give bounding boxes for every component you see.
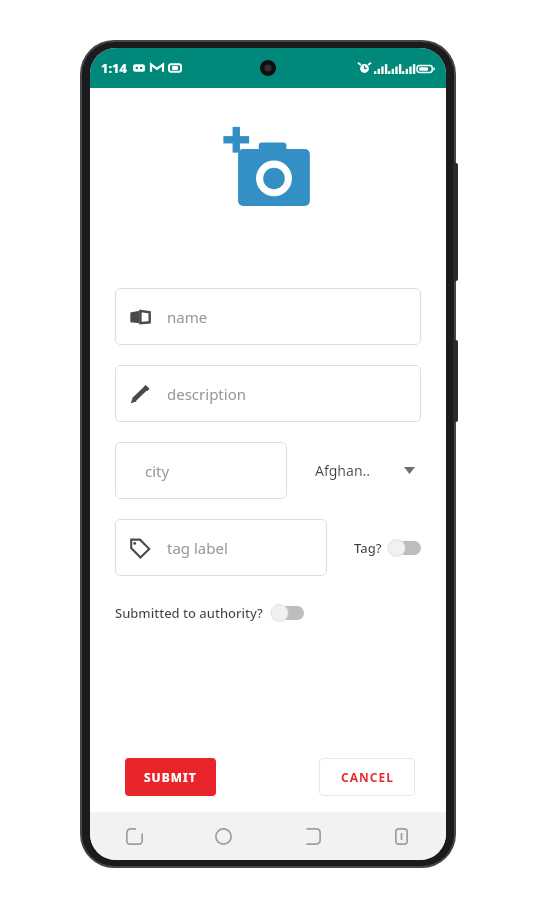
button[interactable]: Toggle: [270, 604, 304, 622]
button[interactable]: Afghan..: [315, 451, 421, 490]
button[interactable]: tag label: [115, 519, 327, 576]
button[interactable]: Back: [268, 812, 357, 860]
staticText: tag label: [167, 538, 228, 558]
staticText: Submitted to authority?: [115, 604, 263, 622]
staticText: CANCEL: [341, 769, 394, 785]
button[interactable]: SUBMIT: [125, 758, 216, 796]
staticText: description: [167, 384, 246, 404]
button[interactable]: Tag?: [354, 533, 421, 563]
button[interactable]: Add photo: [222, 120, 314, 212]
staticText: 1:14: [101, 59, 127, 77]
staticText: city: [145, 461, 170, 481]
staticText: Tag?: [354, 539, 382, 557]
staticText: Afghan..: [315, 461, 371, 480]
button[interactable]: description: [115, 365, 421, 422]
staticText: name: [167, 307, 208, 327]
button[interactable]: Toggle: [387, 539, 421, 557]
button[interactable]: Keyboard: [357, 812, 446, 860]
button[interactable]: Submitted to authority?: [115, 598, 304, 628]
button[interactable]: CANCEL: [319, 758, 415, 796]
button[interactable]: name: [115, 288, 421, 345]
button[interactable]: Recents: [90, 812, 179, 860]
button[interactable]: Home: [179, 812, 268, 860]
button[interactable]: city: [115, 442, 287, 499]
staticText: SUBMIT: [144, 769, 197, 785]
